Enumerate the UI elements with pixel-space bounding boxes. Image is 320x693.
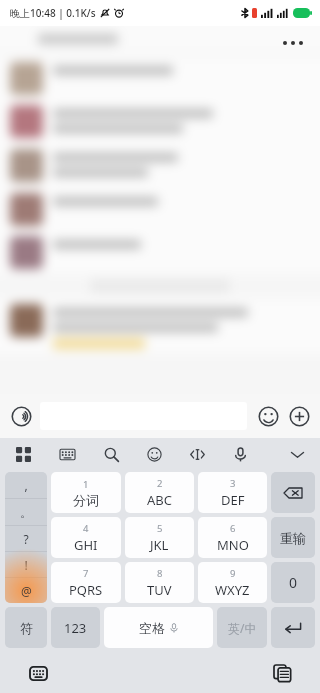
- button[interactable]: Cursor control: [184, 441, 210, 467]
- staticText: MNO: [217, 536, 249, 554]
- button[interactable]: 5: [125, 517, 194, 558]
- button[interactable]: 英/中: [217, 607, 267, 648]
- button[interactable]: ,: [5, 472, 47, 498]
- button[interactable]: @: [5, 578, 47, 603]
- button[interactable]: Backspace: [271, 472, 315, 513]
- staticText: JKL: [150, 536, 169, 554]
- button[interactable]: Emoji: [255, 403, 281, 429]
- button[interactable]: Keyboard: [24, 659, 52, 687]
- staticText: 分词: [73, 492, 99, 508]
- staticText: 5: [157, 522, 163, 535]
- staticText: @: [21, 583, 32, 599]
- staticText: 空格: [139, 620, 165, 636]
- staticText: 英/中: [228, 620, 257, 636]
- staticText: 重输: [280, 530, 306, 546]
- button[interactable]: Voice input: [8, 403, 34, 429]
- button[interactable]: 0: [271, 562, 315, 603]
- staticText: DEF: [221, 491, 245, 509]
- button[interactable]: ?: [5, 526, 47, 551]
- staticText: 7: [83, 567, 89, 580]
- button[interactable]: 7: [51, 562, 121, 603]
- staticText: 2: [157, 477, 163, 490]
- button[interactable]: !: [5, 552, 47, 577]
- button[interactable]: Enter: [271, 607, 315, 648]
- staticText: ABC: [147, 491, 172, 509]
- staticText: 8: [157, 567, 163, 580]
- button[interactable]: 123: [51, 607, 100, 648]
- staticText: ?: [23, 531, 29, 547]
- button[interactable]: Recent apps: [268, 659, 296, 687]
- button[interactable]: More: [286, 403, 312, 429]
- staticText: GHI: [74, 536, 98, 554]
- button[interactable]: Apps: [10, 441, 36, 467]
- button[interactable]: 9: [198, 562, 267, 603]
- staticText: 123: [64, 619, 87, 637]
- staticText: ,: [24, 477, 28, 493]
- staticText: 6: [230, 522, 236, 535]
- staticText: 晚上10:48 | 0.1K/s: [10, 6, 96, 20]
- button[interactable]: 3: [198, 472, 267, 513]
- button[interactable]: 。: [5, 499, 47, 525]
- staticText: WXYZ: [215, 581, 250, 599]
- button[interactable]: 2: [125, 472, 194, 513]
- button[interactable]: 4: [51, 517, 121, 558]
- staticText: 4: [83, 522, 89, 535]
- button[interactable]: 重输: [271, 517, 315, 558]
- staticText: PQRS: [69, 581, 103, 599]
- staticText: 0: [289, 573, 298, 592]
- button[interactable]: Hide keyboard: [284, 441, 310, 467]
- button[interactable]: Emoji: [141, 441, 167, 467]
- button[interactable]: More options: [276, 34, 310, 52]
- button[interactable]: 符: [5, 607, 47, 648]
- staticText: TUV: [147, 581, 172, 599]
- staticText: 9: [230, 567, 236, 580]
- button[interactable]: 空格: [104, 607, 213, 648]
- staticText: 符: [20, 620, 33, 636]
- button[interactable]: 1: [51, 472, 121, 513]
- button[interactable]: Keyboard layout: [54, 441, 80, 467]
- staticText: 3: [230, 477, 236, 490]
- staticText: 1: [83, 478, 89, 491]
- button[interactable]: 8: [125, 562, 194, 603]
- button[interactable]: 6: [198, 517, 267, 558]
- staticText: !: [24, 557, 28, 573]
- button[interactable]: Voice: [227, 441, 253, 467]
- staticText: 。: [20, 505, 32, 520]
- button[interactable]: Search: [98, 441, 124, 467]
